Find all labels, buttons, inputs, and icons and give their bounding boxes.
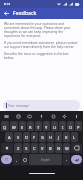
staticText: . <box>66 157 68 162</box>
staticText: Feedback <box>13 10 37 17</box>
staticText: O <box>69 125 73 130</box>
staticText: Y <box>45 125 48 130</box>
button[interactable]: Emoji <box>15 113 22 120</box>
button[interactable]: 6 <box>43 121 50 131</box>
staticText: A <box>8 135 11 140</box>
button[interactable]: D <box>23 132 30 142</box>
button[interactable]: X <box>23 143 30 153</box>
staticText: P <box>77 125 80 130</box>
staticText: L <box>73 135 76 140</box>
staticText: F <box>33 135 36 140</box>
staticText: If you need immediate assistance, please… <box>4 41 79 49</box>
button[interactable]: Menu <box>3 113 10 120</box>
staticText: H <box>49 135 52 140</box>
staticText: R <box>29 125 32 130</box>
staticText: W <box>12 125 16 130</box>
button[interactable]: 4 <box>27 121 34 131</box>
button[interactable]: N <box>55 143 62 153</box>
button[interactable]: Settings <box>61 113 68 120</box>
staticText: We are interested in your questions and … <box>4 22 79 38</box>
button[interactable]: Comma <box>13 154 20 165</box>
button[interactable]: 0 <box>75 121 82 131</box>
staticText: ?1 <box>5 158 9 162</box>
staticText: M <box>65 146 69 151</box>
button[interactable]: 2 <box>10 121 18 131</box>
staticText: 1 <box>4 122 6 125</box>
button[interactable]: 8 <box>59 121 66 131</box>
staticText: 3 <box>22 122 24 125</box>
button[interactable]: J <box>55 132 62 142</box>
button[interactable]: M <box>63 143 70 153</box>
button[interactable]: S <box>14 132 22 142</box>
button[interactable]: G <box>39 132 46 142</box>
button[interactable]: 7 <box>51 121 58 131</box>
button[interactable]: Period <box>63 154 70 165</box>
staticText: S <box>17 135 20 140</box>
staticText: B <box>49 146 52 151</box>
staticText: English <box>41 158 50 162</box>
button[interactable]: Space <box>29 154 62 165</box>
button[interactable]: V <box>39 143 46 153</box>
staticText: E <box>21 125 24 130</box>
staticText: 8 <box>62 122 64 125</box>
staticText: 7 <box>54 122 56 125</box>
button[interactable]: Clipboard <box>50 113 57 120</box>
staticText: T <box>37 125 40 130</box>
staticText: J <box>58 135 60 140</box>
button[interactable]: K <box>63 132 70 142</box>
staticText: G <box>41 135 44 140</box>
staticText: C <box>33 146 36 151</box>
staticText: N <box>57 146 61 151</box>
staticText: Z <box>17 146 20 151</box>
button[interactable]: A <box>5 132 13 142</box>
staticText: 6 <box>46 122 48 125</box>
staticText: Describe the issue or suggestion in the … <box>4 52 79 60</box>
button[interactable]: Back <box>2 9 11 18</box>
staticText: X <box>25 146 28 151</box>
button[interactable]: L <box>71 132 78 142</box>
button[interactable]: More options <box>73 113 80 120</box>
button[interactable]: 3 <box>19 121 26 131</box>
button[interactable]: H <box>47 132 54 142</box>
button[interactable]: F <box>31 132 38 142</box>
button[interactable]: Voice input <box>38 113 45 120</box>
staticText: 9 <box>70 122 72 125</box>
staticText: U <box>53 125 56 130</box>
button[interactable]: Z <box>14 143 22 153</box>
staticText: 0 <box>78 122 80 125</box>
button[interactable]: Symbols <box>1 155 12 164</box>
staticText: Q <box>3 125 7 130</box>
staticText: K <box>65 135 68 140</box>
button[interactable]: Enter <box>71 155 82 164</box>
button[interactable]: C <box>31 143 38 153</box>
button[interactable]: Backspace <box>71 143 82 153</box>
staticText: Your message <box>8 104 30 108</box>
button[interactable]: Your message <box>3 100 80 111</box>
button[interactable]: 9 <box>67 121 74 131</box>
staticText: D <box>25 135 28 140</box>
staticText: 2 <box>13 122 15 125</box>
staticText: 4 <box>30 122 32 125</box>
button[interactable]: B <box>47 143 54 153</box>
button[interactable]: Shift <box>1 143 13 153</box>
staticText: I <box>62 125 64 130</box>
staticText: , <box>16 157 18 162</box>
button[interactable]: GIF <box>26 113 33 120</box>
button[interactable]: 1 <box>1 121 9 131</box>
staticText: 5 <box>38 122 40 125</box>
button[interactable]: 5 <box>35 121 42 131</box>
staticText: V <box>41 146 44 151</box>
button[interactable]: Emoji <box>21 154 28 165</box>
